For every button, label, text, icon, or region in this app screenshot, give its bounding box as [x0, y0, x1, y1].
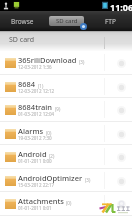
- button[interactable]: More options: [110, 169, 132, 193]
- button[interactable]: More options: [110, 192, 132, 216]
- staticText: (0): [46, 130, 52, 136]
- staticText: 365riliDownload: [18, 55, 77, 65]
- staticText: FTP: [105, 17, 116, 26]
- staticText: (3): [85, 177, 91, 183]
- button[interactable]: More options: [110, 75, 132, 99]
- button[interactable]: 8684train: [0, 98, 132, 122]
- button[interactable]: 365riliDownload: [0, 51, 132, 75]
- staticText: (0): [66, 200, 72, 206]
- button[interactable]: More options: [110, 145, 132, 169]
- staticText: 01-01-2011 0:00: [18, 158, 52, 164]
- staticText: (2): [49, 153, 55, 159]
- button[interactable]: 8684: [0, 75, 132, 99]
- button[interactable]: Alarms: [0, 122, 132, 146]
- staticText: 15-03-2012 22:17: [18, 182, 55, 188]
- staticText: Attachments: [18, 196, 64, 206]
- staticText: SD card: [56, 17, 78, 25]
- staticText: AndroidOptimizer: [18, 173, 83, 183]
- staticText: 19-03-2012 7:30: [18, 135, 52, 141]
- button[interactable]: Browse: [0, 11, 44, 31]
- staticText: (3): [79, 59, 85, 65]
- button[interactable]: More options: [110, 122, 132, 146]
- staticText: Android: [18, 149, 47, 159]
- staticText: 12-03-2012 1:36: [18, 64, 52, 70]
- staticText: (1): [38, 83, 44, 89]
- button[interactable]: Android: [0, 145, 132, 169]
- staticText: 8684train: [18, 102, 53, 112]
- staticText: 8684: [18, 79, 36, 89]
- button[interactable]: FTP: [88, 11, 132, 31]
- button[interactable]: AndroidOptimizer: [0, 169, 132, 193]
- button[interactable]: SD card: [0, 31, 132, 51]
- staticText: (9): [55, 106, 61, 112]
- staticText: 12-03-2012 12:12: [18, 88, 55, 94]
- staticText: Alarms: [18, 126, 44, 136]
- button[interactable]: More options: [110, 51, 132, 75]
- staticText: 11:06: [110, 1, 132, 12]
- staticText: 01-03-2012 12:04: [18, 111, 55, 117]
- staticText: SD card: [9, 35, 35, 45]
- button[interactable]: More options: [110, 98, 132, 122]
- button[interactable]: Attachments: [0, 192, 132, 216]
- staticText: Browse: [11, 17, 34, 26]
- staticText: 01-01-2011 0:01: [18, 205, 52, 211]
- button[interactable]: SD card: [44, 11, 88, 31]
